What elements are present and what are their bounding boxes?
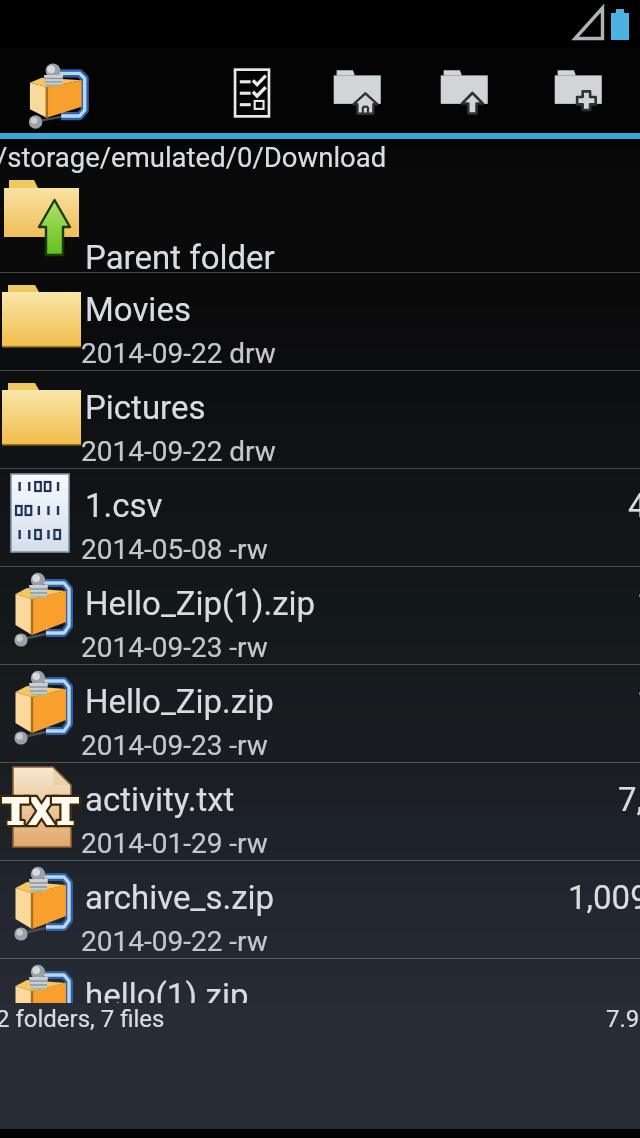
button[interactable]: Hello_Zip.zip [0, 665, 640, 763]
button[interactable]: archive_s.zip [0, 861, 640, 959]
button[interactable]: App [0, 48, 110, 139]
staticText: 2014-09-22 -rw [81, 925, 268, 958]
button[interactable]: 1.csv [0, 469, 640, 567]
staticText: Movies [85, 290, 191, 329]
staticText: Hello_Zip(1).zip [85, 584, 316, 623]
button[interactable]: New folder [519, 48, 640, 139]
staticText: 7.9 [606, 1005, 640, 1033]
button[interactable]: Pictures [0, 371, 640, 469]
button[interactable]: Select files [199, 48, 305, 139]
staticText: Pictures [85, 388, 206, 427]
staticText: 2 folders, 7 files [0, 1005, 165, 1033]
staticText: archive_s.zip [85, 878, 275, 917]
staticText: hello(1).zip [85, 976, 249, 1015]
staticText: 1,234 [637, 584, 640, 623]
staticText: /storage/emulated/0/Download [0, 141, 387, 173]
staticText: 1,234 [637, 682, 640, 721]
button[interactable]: hello(1).zip [0, 959, 640, 1057]
button[interactable]: Parent folder [0, 175, 640, 273]
button[interactable]: Home folder [305, 48, 412, 139]
button[interactable]: Up one level [412, 48, 519, 139]
staticText: 2014-01-29 -rw [81, 827, 268, 860]
staticText: 1,009 [568, 878, 640, 917]
staticText: 7,890 [618, 780, 640, 819]
staticText: activity.txt [85, 780, 235, 819]
button[interactable]: Hello_Zip(1).zip [0, 567, 640, 665]
staticText: 2014-09-23 -rw [81, 729, 268, 762]
staticText: 2014-09-22 drw [81, 337, 276, 370]
staticText: 2014-05-08 -rw [81, 533, 268, 566]
staticText: 1.csv [85, 486, 163, 525]
staticText: 2014-09-22 -rw [81, 1023, 268, 1056]
button[interactable]: Movies [0, 273, 640, 371]
staticText: 2014-09-22 drw [81, 435, 276, 468]
button[interactable]: activity.txt [0, 763, 640, 861]
staticText: Hello_Zip.zip [85, 682, 274, 721]
staticText: Parent folder [85, 238, 275, 277]
staticText: 4,567 [628, 486, 640, 525]
staticText: 2014-09-23 -rw [81, 631, 268, 664]
